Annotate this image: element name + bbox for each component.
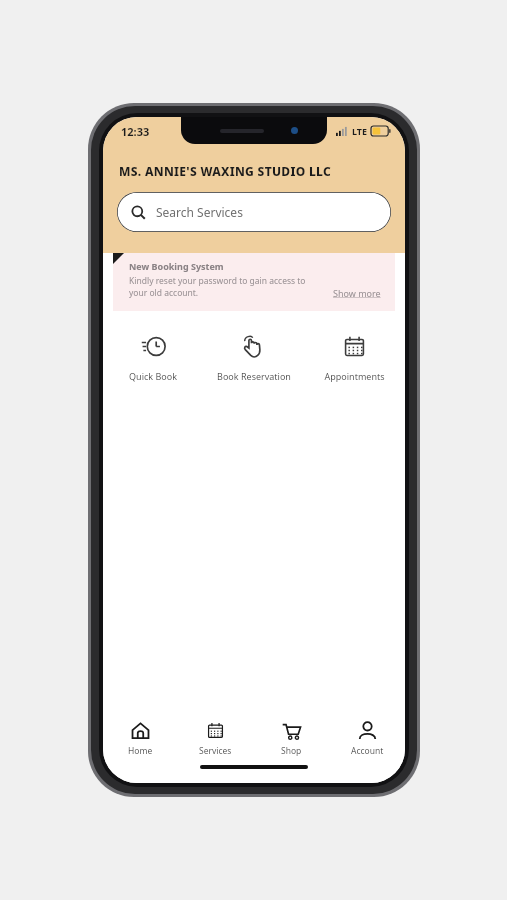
staticText: Shop	[281, 745, 302, 757]
button[interactable]: Show more	[333, 287, 381, 299]
button[interactable]: Home	[103, 711, 178, 765]
button[interactable]: Quick Book	[103, 333, 203, 382]
staticText: Home	[128, 745, 153, 757]
staticText: MS. ANNIE'S WAXING STUDIO LLC	[119, 163, 332, 179]
button[interactable]: New Booking System	[113, 253, 395, 311]
staticText: 12:33	[121, 124, 150, 139]
button[interactable]: Shop	[253, 711, 329, 765]
button[interactable]: Search Services	[117, 192, 391, 232]
button[interactable]: Account	[329, 711, 405, 765]
staticText: Services	[199, 745, 232, 757]
button[interactable]: Book Reservation	[203, 333, 304, 382]
button[interactable]: Services	[178, 711, 253, 765]
button[interactable]: Appointments	[304, 333, 405, 382]
staticText: New Booking System	[129, 260, 224, 272]
staticText: Book Reservation	[217, 370, 291, 382]
staticText: Appointments	[324, 370, 385, 382]
staticText: Kindly reset your password to gain acces…	[129, 275, 306, 287]
staticText: LTE	[352, 125, 368, 137]
staticText: Quick Book	[129, 370, 177, 382]
staticText: your old account.	[129, 287, 199, 299]
staticText: Account	[351, 745, 384, 757]
staticText: Search Services	[156, 204, 243, 220]
